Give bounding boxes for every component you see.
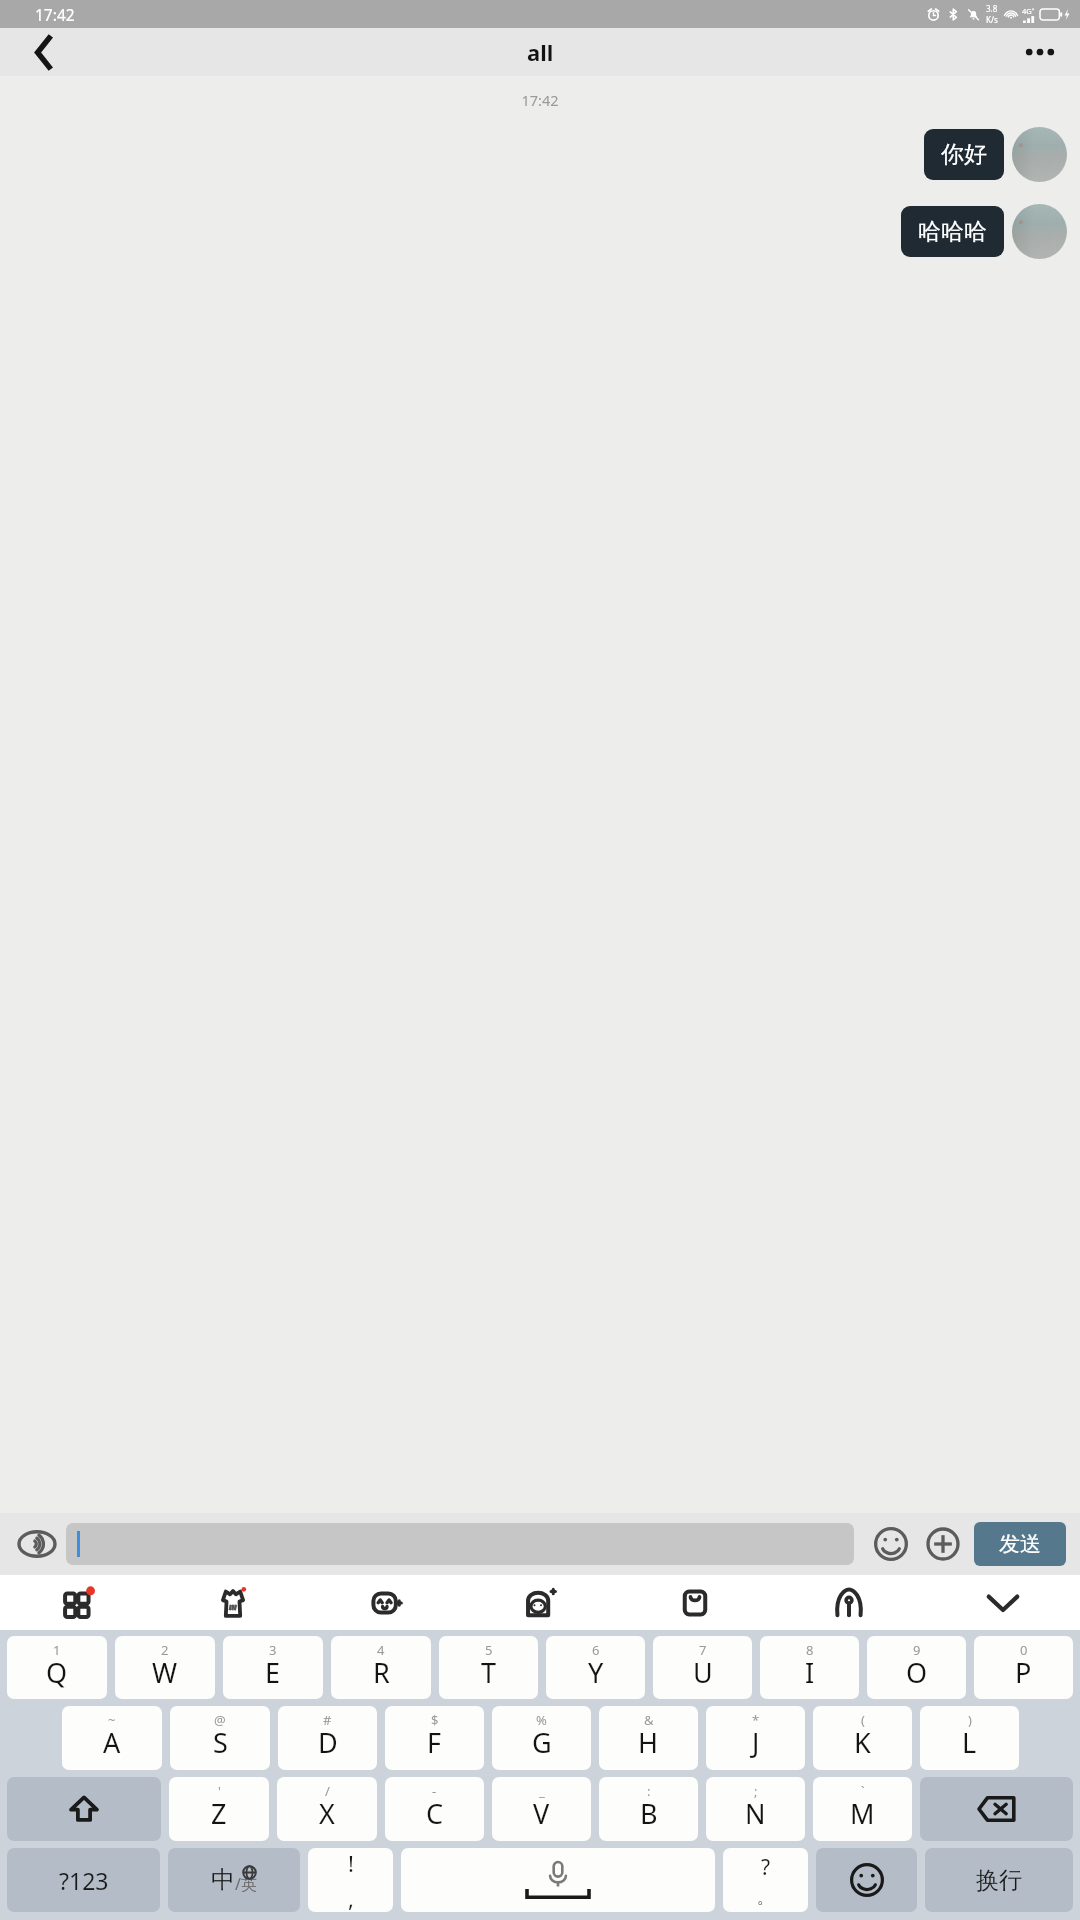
button[interactable]: ;	[706, 1777, 805, 1841]
button[interactable]: Collapse	[926, 1575, 1080, 1630]
button[interactable]: 7	[653, 1636, 752, 1699]
staticText: )	[968, 1711, 972, 1729]
staticText: 发送	[999, 1531, 1041, 1557]
staticText: #	[323, 1711, 332, 1729]
button[interactable]: 5	[439, 1636, 538, 1699]
staticText: 4	[377, 1641, 385, 1659]
staticText: 0	[1020, 1641, 1028, 1659]
button[interactable]: 9	[867, 1636, 966, 1699]
staticText: Z	[211, 1795, 227, 1832]
staticText: (	[861, 1711, 865, 1729]
button[interactable]: 4	[331, 1636, 431, 1699]
button[interactable]: Avatar	[464, 1575, 618, 1630]
staticText: Q	[46, 1654, 68, 1691]
staticText: -	[432, 1782, 437, 1800]
button[interactable]: Space	[401, 1848, 715, 1912]
staticText: J	[752, 1724, 760, 1761]
staticText: R	[373, 1654, 390, 1691]
button[interactable]: 8	[760, 1636, 859, 1699]
button[interactable]: 哈哈哈	[901, 206, 1004, 257]
staticText: @	[214, 1711, 226, 1729]
staticText: V	[533, 1795, 550, 1832]
button[interactable]: 1	[7, 1636, 107, 1699]
staticText: '	[218, 1782, 221, 1800]
button[interactable]: More options	[1014, 28, 1066, 76]
button[interactable]: #	[278, 1706, 377, 1770]
staticText: /英	[235, 1873, 257, 1895]
button[interactable]: 2	[115, 1636, 215, 1699]
button[interactable]: '	[169, 1777, 269, 1841]
staticText: M	[850, 1795, 875, 1832]
staticText: X	[319, 1795, 335, 1832]
button[interactable]: Backspace	[920, 1777, 1073, 1841]
staticText: L	[962, 1724, 977, 1761]
button[interactable]: `	[813, 1777, 912, 1841]
staticText: !	[348, 1848, 354, 1878]
button[interactable]: Voice input	[14, 1521, 60, 1567]
staticText: Y	[588, 1654, 604, 1691]
staticText: 1	[53, 1641, 61, 1659]
staticText: G	[532, 1724, 552, 1761]
button[interactable]: $	[385, 1706, 484, 1770]
staticText: ~	[108, 1711, 116, 1729]
button[interactable]: 你好	[924, 129, 1004, 180]
button[interactable]: )	[920, 1706, 1019, 1770]
button[interactable]: Symbols	[7, 1848, 160, 1912]
button[interactable]: 发送	[974, 1522, 1066, 1566]
staticText: W	[152, 1654, 178, 1691]
staticText: 8	[806, 1641, 814, 1659]
button[interactable]: %	[492, 1706, 591, 1770]
button[interactable]: ~	[62, 1706, 162, 1770]
button[interactable]: &	[599, 1706, 698, 1770]
button[interactable]: Avatar	[1012, 127, 1067, 182]
button[interactable]: @	[170, 1706, 270, 1770]
button[interactable]: Emoji	[868, 1521, 914, 1567]
button[interactable]: _	[492, 1777, 591, 1841]
staticText: K/s	[986, 14, 998, 25]
staticText: 哈哈哈	[918, 217, 987, 246]
staticText: 9	[913, 1641, 921, 1659]
button[interactable]: Add attachment	[920, 1521, 966, 1567]
button[interactable]: Avatar	[1012, 204, 1067, 259]
button[interactable]: Enter	[925, 1848, 1073, 1912]
staticText: &	[644, 1711, 654, 1729]
staticText: *	[752, 1711, 760, 1729]
button[interactable]: 3	[223, 1636, 323, 1699]
button[interactable]: Question period	[723, 1848, 808, 1912]
button[interactable]: Language	[168, 1848, 300, 1912]
button[interactable]: Shift	[7, 1777, 161, 1841]
staticText: `	[861, 1782, 865, 1800]
staticText: 3.8	[986, 3, 998, 14]
staticText: 。	[757, 1887, 774, 1908]
staticText: _	[539, 1782, 545, 1800]
button[interactable]: Account	[772, 1575, 926, 1630]
staticText: ,	[348, 1883, 354, 1912]
staticText: U	[693, 1654, 713, 1691]
button[interactable]: Apps	[0, 1575, 155, 1630]
button[interactable]: Stickers	[155, 1575, 310, 1630]
staticText: E	[265, 1654, 281, 1691]
staticText: B	[640, 1795, 658, 1832]
staticText: I	[805, 1654, 815, 1691]
button[interactable]: 6	[546, 1636, 645, 1699]
staticText: 2	[161, 1641, 169, 1659]
staticText: P	[1015, 1654, 1032, 1691]
staticText: 3	[269, 1641, 277, 1659]
button[interactable]: Emoticons	[310, 1575, 464, 1630]
staticText: N	[745, 1795, 766, 1832]
button[interactable]: *	[706, 1706, 805, 1770]
button[interactable]: Emoji keyboard	[816, 1848, 917, 1912]
button[interactable]: (	[813, 1706, 912, 1770]
staticText: :	[647, 1782, 651, 1800]
button[interactable]: -	[385, 1777, 484, 1841]
staticText: H	[638, 1724, 659, 1761]
button[interactable]: Exclamation comma	[308, 1848, 393, 1912]
button[interactable]: Bag	[618, 1575, 772, 1630]
staticText: 17:42	[0, 90, 1080, 110]
button[interactable]: 0	[974, 1636, 1073, 1699]
button[interactable]	[66, 1523, 854, 1565]
button[interactable]: /	[277, 1777, 377, 1841]
staticText: A	[103, 1724, 121, 1761]
button[interactable]: Back	[18, 28, 70, 76]
button[interactable]: :	[599, 1777, 698, 1841]
